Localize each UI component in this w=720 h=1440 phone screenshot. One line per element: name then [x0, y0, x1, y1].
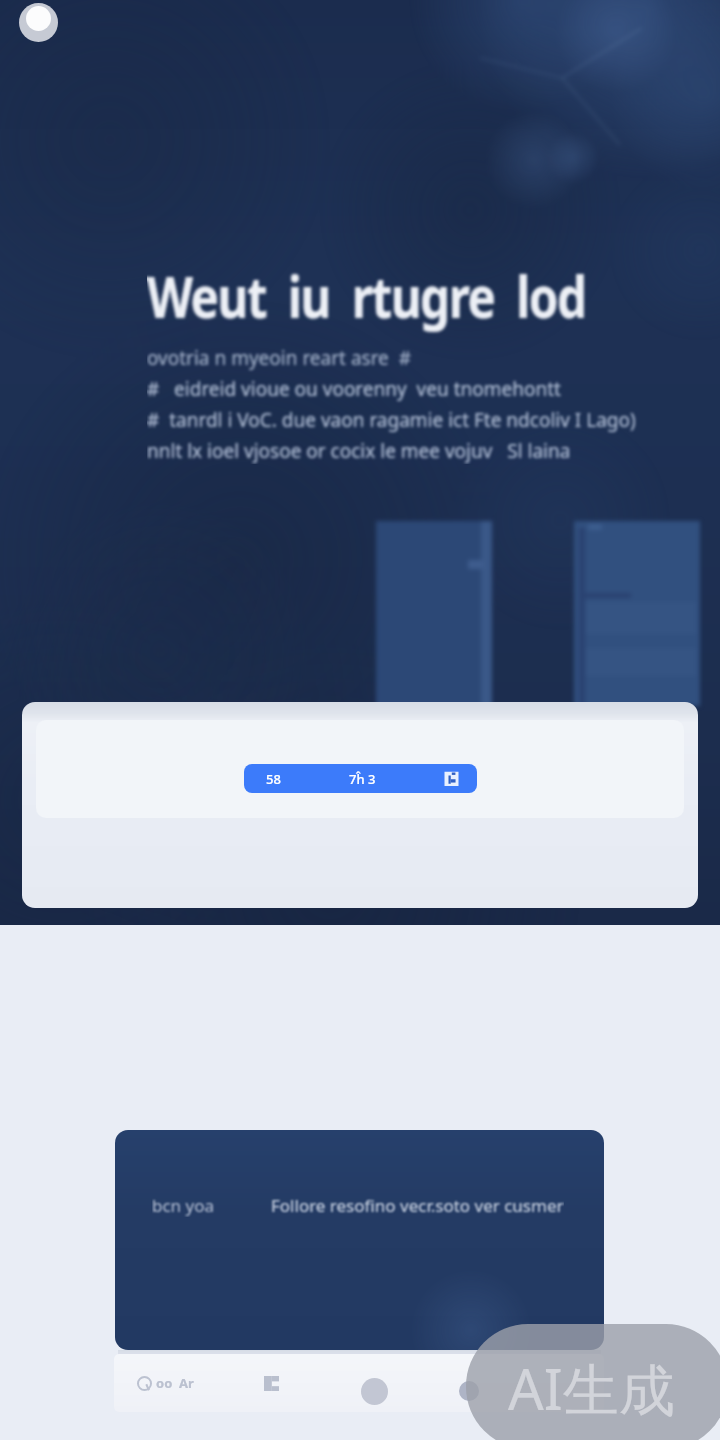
staticText: AI生成 — [508, 1350, 675, 1426]
staticText: Follore resofino vecr.soto ver cusmer — [271, 1194, 564, 1217]
button[interactable]: oo Ar — [134, 1366, 197, 1400]
staticText: 58 — [266, 770, 281, 788]
button[interactable]: Home — [361, 1378, 388, 1405]
staticText: 7ĥ 3 — [349, 770, 376, 788]
button[interactable]: 58 — [22, 702, 698, 908]
staticText: # eidreid vioue ou voorenny veu tnomehon… — [147, 376, 561, 402]
staticText: oo Ar — [156, 1374, 194, 1392]
button[interactable]: Library — [254, 1366, 288, 1400]
button[interactable]: Account — [459, 1381, 479, 1401]
button[interactable]: Profile — [19, 3, 58, 42]
staticText: Weut iu rtugre lod — [147, 257, 586, 335]
staticText: ovotria n myeoin reart asre # — [147, 345, 411, 371]
button[interactable]: bcn yoa — [115, 1130, 604, 1350]
button[interactable]: 58 — [244, 764, 477, 793]
staticText: nnlt lx ioel vjosoe or cocix le mee voju… — [147, 438, 571, 464]
staticText: bcn yoa — [152, 1194, 215, 1217]
staticText: # tanrdl i VoC. due vaon ragamie ict Fte… — [147, 407, 636, 433]
